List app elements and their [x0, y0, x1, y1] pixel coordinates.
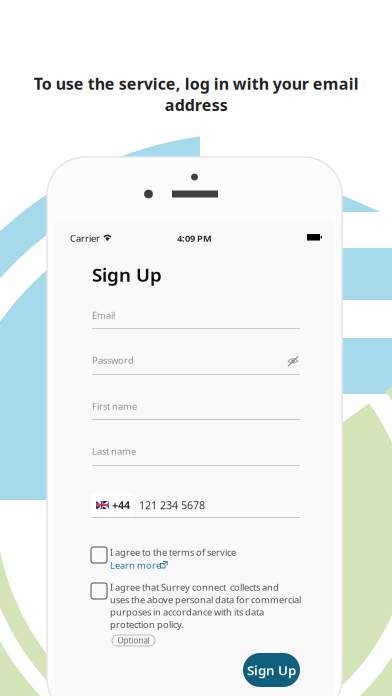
- staticText: Optional: [117, 635, 149, 646]
- staticText: Password: [92, 354, 134, 366]
- staticText: Last name: [92, 445, 136, 457]
- staticText: Carrier: [70, 232, 100, 244]
- staticText: First name: [92, 400, 137, 412]
- button[interactable]: I agree that Surrey connect collects and…: [91, 581, 306, 633]
- button[interactable]: Sign Up: [243, 653, 300, 687]
- staticText: Sign Up: [92, 262, 162, 287]
- staticText: To use the service, log in with your ema…: [33, 73, 358, 115]
- staticText: Email: [92, 309, 115, 321]
- staticText: 121 234 5678: [139, 498, 205, 512]
- button[interactable]: I agree to the terms of service: [91, 546, 291, 576]
- staticText: 4:09 PM: [177, 232, 212, 244]
- staticText: I agree that Surrey connect collects and…: [110, 581, 301, 631]
- staticText: Sign Up: [247, 661, 296, 679]
- staticText: +44: [112, 498, 130, 512]
- staticText: I agree to the terms of service: [110, 546, 236, 558]
- staticText: Learn more: [110, 559, 161, 571]
